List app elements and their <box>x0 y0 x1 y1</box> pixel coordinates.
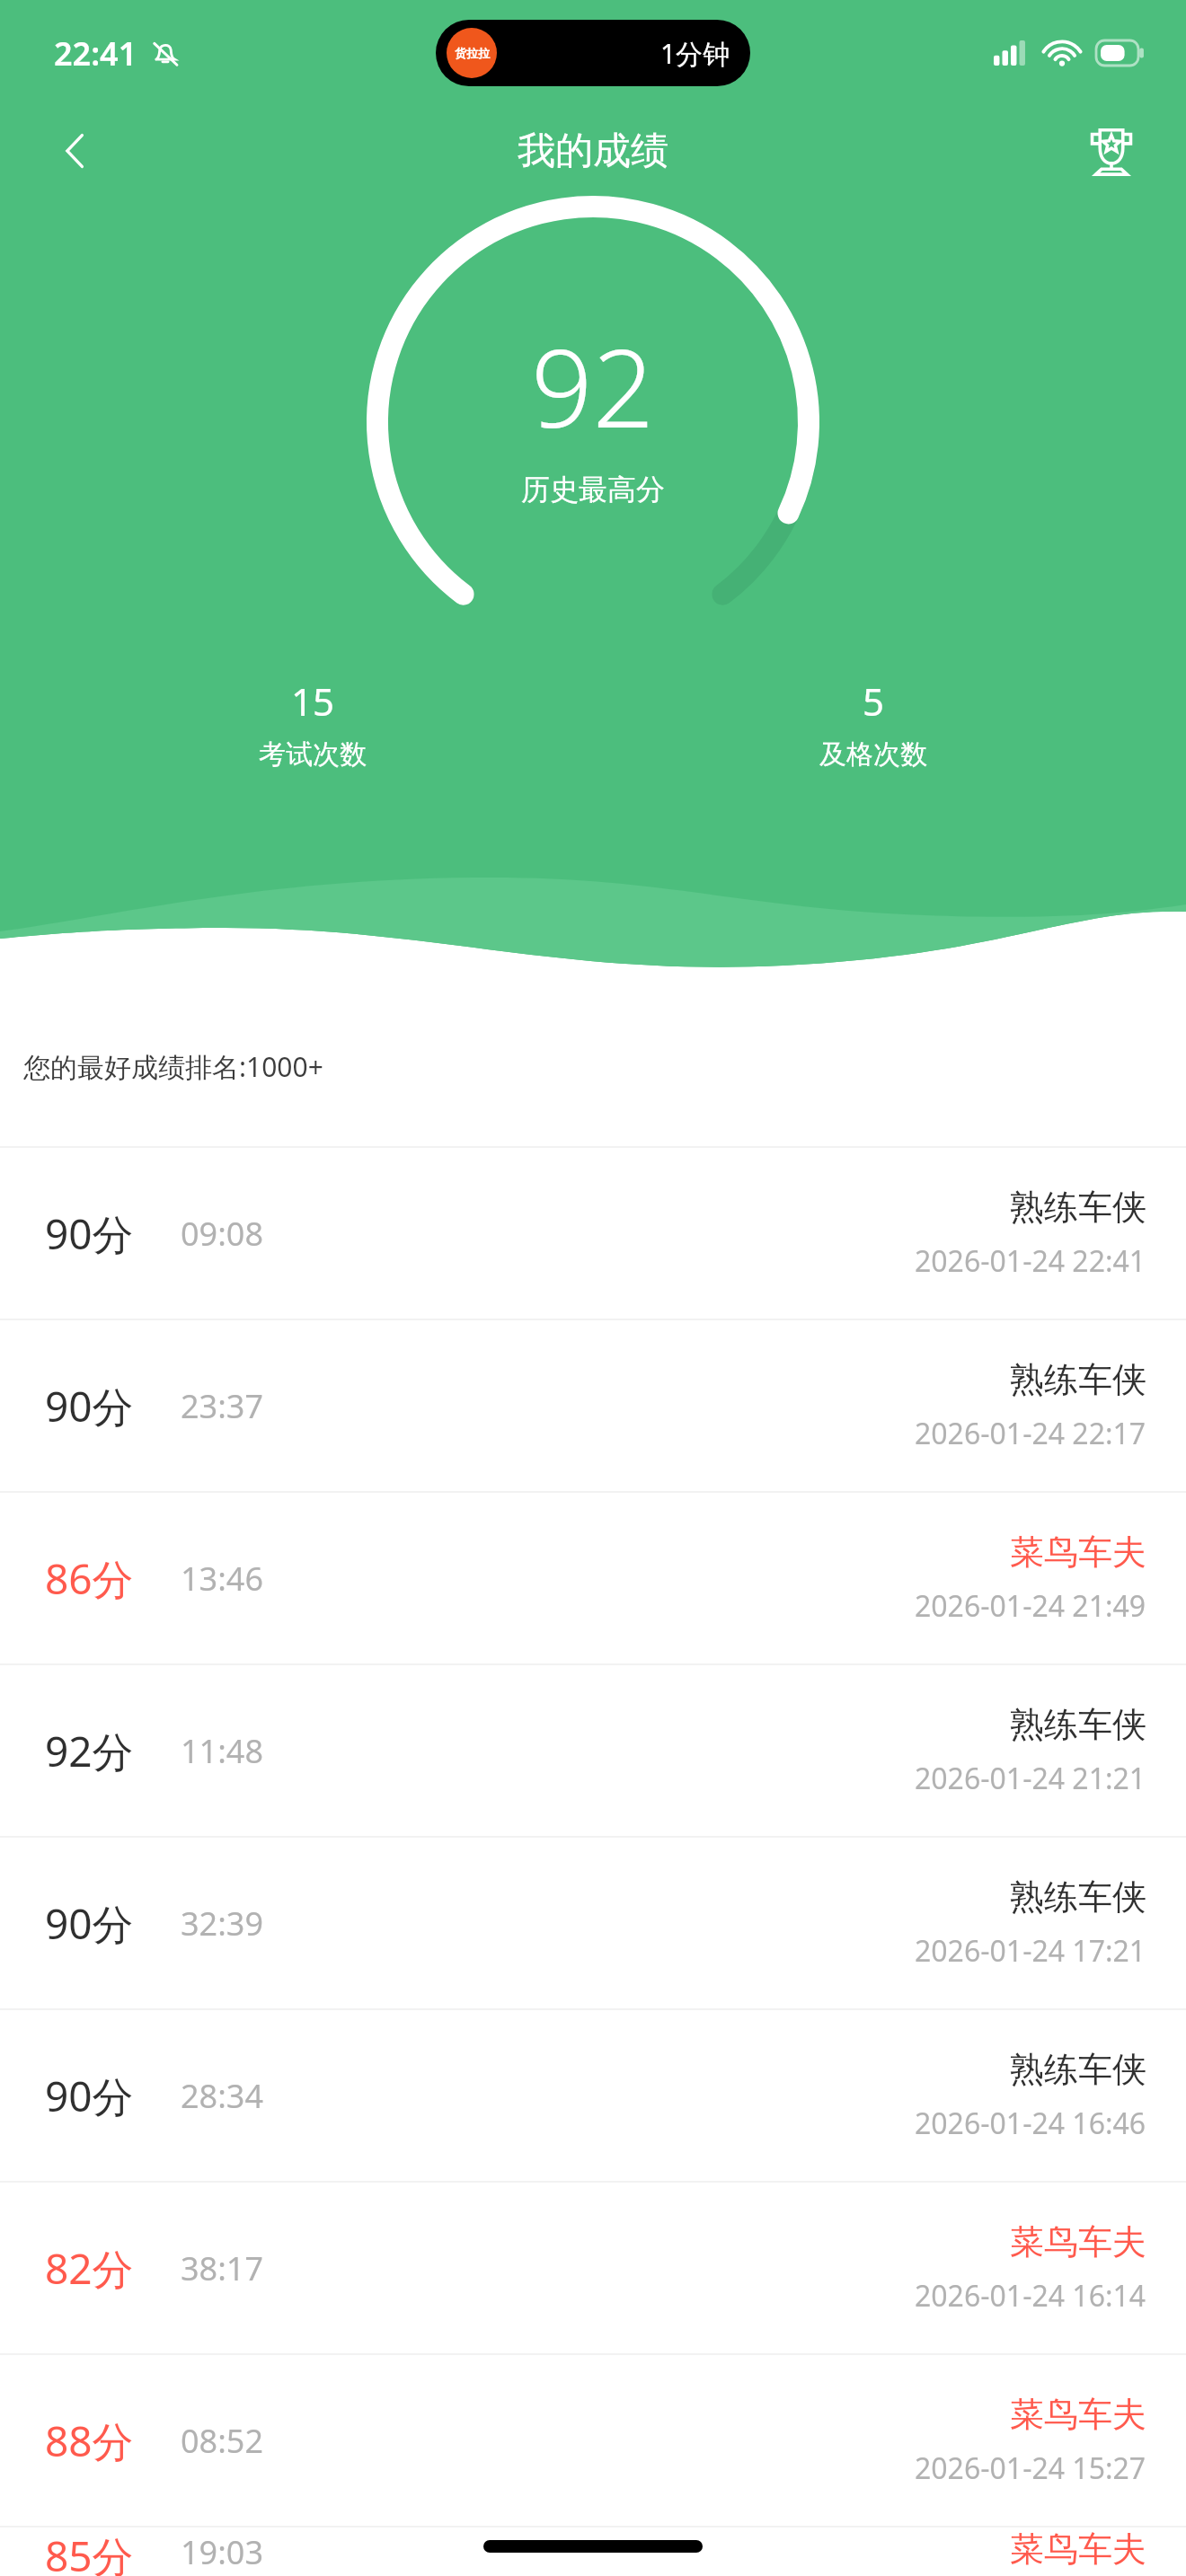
staticText: 我的成绩 <box>518 128 668 175</box>
staticText: 熟练车侠 <box>1010 1358 1146 1401</box>
staticText: 85分 <box>45 2527 134 2576</box>
staticText: 38:17 <box>181 2246 264 2290</box>
staticText: 15 <box>291 675 335 727</box>
button[interactable]: 88分 <box>0 2355 1186 2526</box>
staticText: 菜鸟车夫 <box>1010 2220 1146 2263</box>
staticText: 92分 <box>45 1723 134 1779</box>
button[interactable]: Achievements <box>1073 112 1150 190</box>
staticText: 熟练车侠 <box>1010 1875 1146 1919</box>
staticText: 86分 <box>45 1550 134 1607</box>
staticText: 熟练车侠 <box>1010 1186 1146 1229</box>
staticText: 2026-01-24 17:21 <box>915 1931 1146 1971</box>
staticText: 熟练车侠 <box>1010 1703 1146 1746</box>
button[interactable]: 90分 <box>0 2010 1186 2181</box>
staticText: 历史最高分 <box>521 472 665 507</box>
staticText: 90分 <box>45 1895 134 1952</box>
button[interactable]: 82分 <box>0 2183 1186 2353</box>
staticText: 11:48 <box>181 1729 264 1773</box>
staticText: 考试次数 <box>259 737 367 772</box>
staticText: 菜鸟车夫 <box>1010 2527 1146 2571</box>
staticText: 2026-01-24 16:46 <box>915 2104 1146 2143</box>
button[interactable]: 90分 <box>0 1148 1186 1319</box>
staticText: 2026-01-24 16:14 <box>915 2276 1146 2316</box>
staticText: 19:03 <box>181 2530 264 2574</box>
staticText: 及格次数 <box>819 737 927 772</box>
staticText: 28:34 <box>181 2074 264 2118</box>
button[interactable]: 86分 <box>0 1493 1186 1663</box>
staticText: 09:08 <box>181 1212 264 1256</box>
button[interactable]: 92分 <box>0 1665 1186 1836</box>
staticText: 88分 <box>45 2413 134 2469</box>
button[interactable]: 90分 <box>0 1320 1186 1491</box>
staticText: 货拉拉 <box>455 46 490 60</box>
staticText: 2026-01-24 15:27 <box>915 2448 1146 2488</box>
staticText: 2026-01-24 22:41 <box>915 1241 1146 1281</box>
staticText: 22:41 <box>54 31 137 75</box>
staticText: 1分钟 <box>660 35 730 72</box>
staticText: 13:46 <box>181 1557 264 1601</box>
staticText: 您的最好成绩排名:1000+ <box>23 1048 323 1085</box>
staticText: 23:37 <box>181 1384 264 1428</box>
button[interactable]: 90分 <box>0 1838 1186 2008</box>
staticText: 2026-01-24 22:17 <box>915 1414 1146 1453</box>
staticText: 熟练车侠 <box>1010 2048 1146 2091</box>
staticText: 82分 <box>45 2240 134 2297</box>
staticText: 90分 <box>45 1378 134 1434</box>
button[interactable]: Back <box>41 117 110 185</box>
staticText: 5 <box>863 675 885 727</box>
staticText: 90分 <box>45 1205 134 1262</box>
staticText: 2026-01-24 21:49 <box>915 1586 1146 1626</box>
staticText: 90分 <box>45 2068 134 2124</box>
staticText: 92 <box>531 313 655 459</box>
staticText: 菜鸟车夫 <box>1010 1531 1146 1574</box>
staticText: 2026-01-24 21:21 <box>915 1759 1146 1798</box>
button[interactable]: 85分 <box>0 2527 1186 2576</box>
staticText: 08:52 <box>181 2419 264 2463</box>
staticText: 菜鸟车夫 <box>1010 2393 1146 2436</box>
staticText: 32:39 <box>181 1901 264 1945</box>
